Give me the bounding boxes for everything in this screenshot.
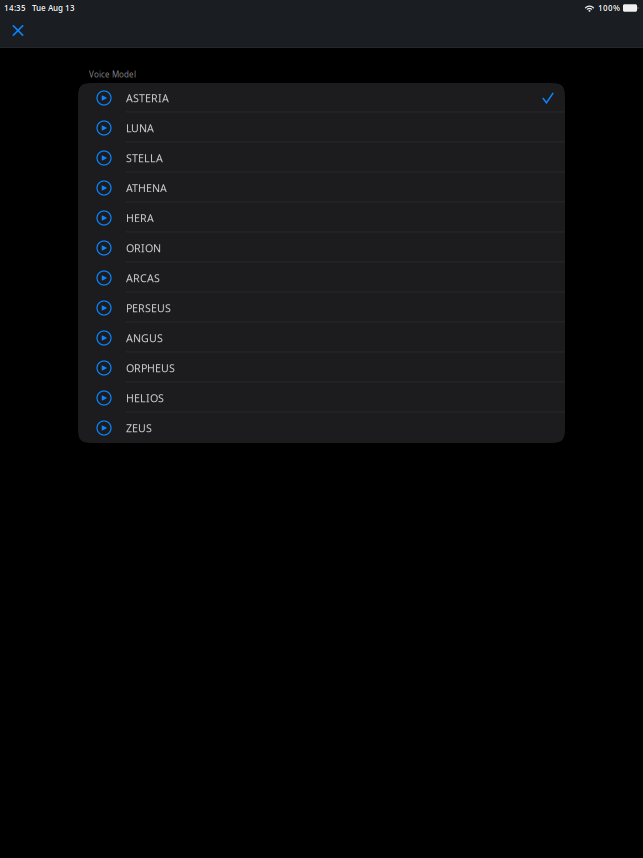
button[interactable]: ZEUS: [78, 413, 565, 443]
button[interactable]: LUNA: [78, 113, 565, 143]
staticText: ASTERIA: [126, 91, 169, 105]
button[interactable]: Close: [3, 18, 33, 46]
button[interactable]: ASTERIA: [78, 83, 565, 113]
staticText: HELIOS: [126, 391, 164, 405]
button[interactable]: PERSEUS: [78, 293, 565, 323]
staticText: 14:35: [4, 3, 26, 13]
staticText: PERSEUS: [126, 301, 171, 315]
button[interactable]: HERA: [78, 203, 565, 233]
button[interactable]: ATHENA: [78, 173, 565, 203]
button[interactable]: STELLA: [78, 143, 565, 173]
staticText: ZEUS: [126, 421, 152, 435]
button[interactable]: HELIOS: [78, 383, 565, 413]
staticText: ARCAS: [126, 271, 160, 285]
staticText: ORPHEUS: [126, 361, 175, 375]
button[interactable]: ARCAS: [78, 263, 565, 293]
staticText: ANGUS: [126, 331, 163, 345]
button[interactable]: ORPHEUS: [78, 353, 565, 383]
staticText: ATHENA: [126, 181, 167, 195]
button[interactable]: ORION: [78, 233, 565, 263]
staticText: Voice Model: [89, 69, 136, 80]
staticText: LUNA: [126, 121, 154, 135]
staticText: ORION: [126, 241, 161, 255]
staticText: 100%: [598, 3, 620, 13]
staticText: HERA: [126, 211, 154, 225]
staticText: Tue Aug 13: [32, 3, 75, 13]
staticText: STELLA: [126, 151, 163, 165]
button[interactable]: ANGUS: [78, 323, 565, 353]
